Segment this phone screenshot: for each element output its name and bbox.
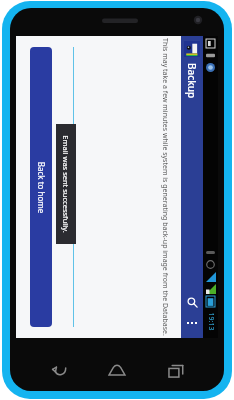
button[interactable]: Recent apps: [159, 354, 193, 388]
staticText: This may take a few minutes while system…: [160, 38, 170, 336]
button[interactable]: Back: [42, 354, 76, 388]
staticText: Email was sent successfully.: [61, 135, 71, 233]
staticText: Backup: [185, 63, 199, 99]
staticText: 19:13: [205, 312, 215, 330]
button[interactable]: Backup: [181, 58, 203, 104]
button[interactable]: More options: [183, 314, 201, 332]
button[interactable]: Back to home: [30, 47, 52, 327]
button[interactable]: Home: [100, 354, 134, 388]
button[interactable]: Search: [182, 292, 202, 312]
staticText: Back to home: [35, 161, 46, 213]
